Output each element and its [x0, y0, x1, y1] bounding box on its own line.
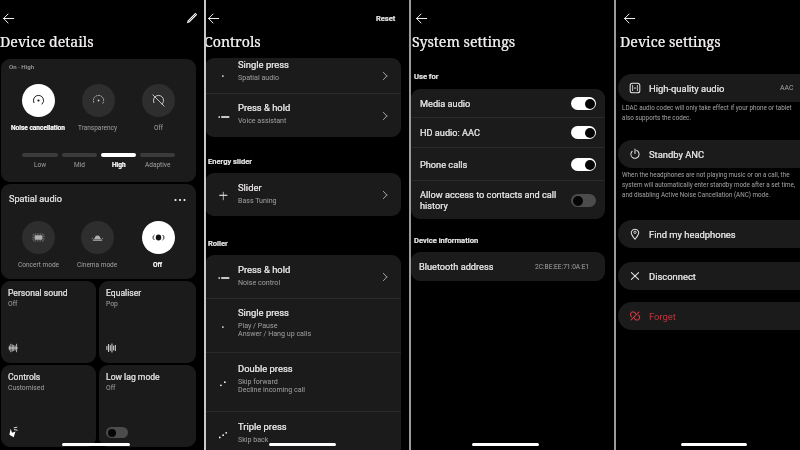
staticText: Skip back: [238, 435, 269, 443]
staticText: Media audio: [420, 98, 471, 109]
button[interactable]: Noise cancellation: [4, 84, 72, 132]
button[interactable]: Low: [22, 153, 58, 169]
staticText: AAC: [780, 84, 794, 92]
staticText: HD audio: AAC: [420, 127, 481, 138]
button[interactable]: Single press: [205, 58, 401, 93]
staticText: Noise cancellation: [11, 124, 65, 132]
button[interactable]: Off: [124, 84, 192, 132]
button[interactable]: Find my headphones: [618, 220, 800, 248]
button[interactable]: Press & hold: [205, 94, 401, 137]
button[interactable]: Low lag mode: [99, 365, 196, 447]
button[interactable]: Slider: [205, 173, 401, 216]
staticText: Roller: [208, 239, 228, 248]
button[interactable]: Media audio: [411, 89, 605, 117]
button[interactable]: Adaptive: [140, 153, 175, 169]
staticText: Personal sound: [8, 288, 68, 298]
button[interactable]: Standby ANC: [618, 140, 800, 168]
staticText: LDAC audio codec will only take effect i…: [622, 104, 792, 121]
button[interactable]: Mid: [62, 153, 97, 169]
button[interactable]: High-quality audio: [618, 74, 800, 102]
staticText: System settings: [412, 32, 516, 51]
staticText: On · High: [9, 63, 35, 70]
staticText: Slider: [238, 182, 262, 193]
staticText: Phone calls: [420, 159, 468, 170]
button[interactable]: Cinema mode: [63, 221, 131, 269]
button[interactable]: HD audio: AAC: [411, 118, 605, 147]
button[interactable]: Double press: [205, 353, 401, 411]
staticText: Noise control: [238, 278, 281, 286]
staticText: Controls: [204, 32, 261, 51]
button[interactable]: Back: [203, 8, 223, 28]
button[interactable]: Allow access to contacts and call histor…: [411, 181, 605, 219]
staticText: Find my headphones: [649, 229, 736, 240]
button[interactable]: Phone calls: [411, 148, 605, 180]
button[interactable]: Bluetooth address: [411, 252, 605, 281]
staticText: Device settings: [620, 32, 721, 51]
staticText: High: [112, 161, 126, 169]
staticText: Transparency: [78, 124, 118, 132]
button[interactable]: High: [101, 153, 136, 169]
staticText: Off: [8, 300, 18, 308]
staticText: Low lag mode: [106, 372, 160, 382]
staticText: Standby ANC: [649, 149, 705, 160]
button[interactable]: Concert mode: [4, 221, 72, 269]
staticText: Adaptive: [145, 161, 171, 169]
button[interactable]: Disconnect: [618, 262, 800, 290]
staticText: Single press: [238, 307, 289, 318]
button[interactable]: Personal sound: [1, 281, 96, 363]
button[interactable]: More options: [171, 191, 189, 209]
staticText: Energy slider: [208, 157, 252, 166]
staticText: Forget: [649, 311, 676, 322]
button[interactable]: Triple press: [205, 412, 401, 450]
button[interactable]: Forget: [618, 302, 800, 330]
staticText: When the headphones are not playing musi…: [622, 171, 796, 198]
button[interactable]: Equaliser: [99, 281, 196, 363]
staticText: Low: [34, 161, 47, 169]
staticText: 2C:BE:EE:71:0A:E1: [535, 263, 590, 271]
staticText: Off: [106, 384, 116, 392]
button[interactable]: Single press: [205, 299, 401, 352]
staticText: Bluetooth address: [419, 261, 494, 272]
staticText: Spatial audio: [238, 73, 279, 81]
staticText: Customised: [8, 384, 45, 392]
staticText: Skip forward: [238, 377, 278, 385]
staticText: Reset: [376, 14, 396, 23]
staticText: Answer / Hang up calls: [238, 329, 312, 337]
staticText: Press & hold: [238, 264, 291, 275]
staticText: Cinema mode: [77, 261, 118, 269]
staticText: Mid: [74, 161, 85, 169]
staticText: Device information: [414, 236, 479, 245]
staticText: Disconnect: [649, 271, 696, 282]
button[interactable]: Back: [0, 8, 18, 28]
staticText: Play / Pause: [238, 321, 278, 329]
staticText: Equaliser: [106, 288, 142, 298]
staticText: Concert mode: [18, 261, 59, 269]
staticText: Allow access to contacts and call histor…: [420, 189, 557, 211]
button[interactable]: Off: [124, 221, 192, 269]
staticText: Off: [153, 261, 163, 269]
staticText: Voice assistant: [238, 116, 287, 124]
staticText: Triple press: [238, 421, 287, 432]
staticText: Pop: [106, 300, 118, 308]
staticText: High-quality audio: [649, 83, 725, 94]
staticText: Press & hold: [238, 102, 291, 113]
button[interactable]: Back: [619, 8, 639, 28]
button[interactable]: Controls: [1, 365, 96, 447]
staticText: Device details: [0, 32, 94, 51]
button[interactable]: Press & hold: [205, 255, 401, 298]
staticText: Controls: [8, 372, 41, 382]
button[interactable]: Edit: [182, 8, 202, 28]
staticText: Use for: [414, 72, 439, 81]
button[interactable]: Transparency: [64, 84, 132, 132]
staticText: Single press: [238, 59, 289, 70]
button[interactable]: Reset: [373, 11, 399, 26]
staticText: Decline incoming call: [238, 385, 306, 393]
staticText: Off: [154, 124, 163, 132]
staticText: Spatial audio: [9, 193, 63, 204]
staticText: Double press: [238, 363, 293, 374]
staticText: Bass Tuning: [238, 196, 277, 204]
button[interactable]: Back: [411, 8, 431, 28]
